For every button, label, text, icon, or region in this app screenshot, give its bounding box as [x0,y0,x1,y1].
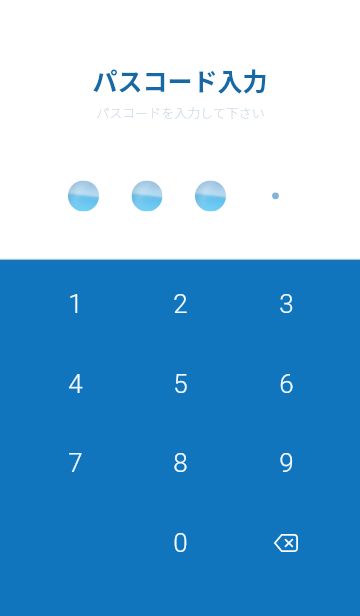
button[interactable]: 9 [233,423,339,503]
staticText: 6 [279,369,294,399]
button[interactable]: 7 [22,423,128,503]
staticText: 1 [68,289,83,319]
button[interactable]: 6 [233,344,339,424]
staticText: 7 [68,448,83,478]
button[interactable]: 2 [127,264,233,344]
button[interactable]: 8 [127,423,233,503]
staticText: パスコード入力 [92,62,268,98]
staticText: 0 [173,528,188,558]
staticText: 3 [279,289,294,319]
button[interactable]: 5 [127,344,233,424]
button[interactable]: 0 [127,503,233,583]
staticText: 2 [173,289,188,319]
staticText: 4 [68,369,83,399]
staticText: 5 [173,369,188,399]
button[interactable]: 1 [22,264,128,344]
staticText: パスコードを入力して下さい [96,103,265,122]
staticText: 8 [173,448,188,478]
button[interactable]: 4 [22,344,128,424]
button[interactable]: 3 [233,264,339,344]
other: Backspace [274,534,298,552]
button[interactable]: Delete [233,503,339,583]
staticText: 9 [279,448,294,478]
